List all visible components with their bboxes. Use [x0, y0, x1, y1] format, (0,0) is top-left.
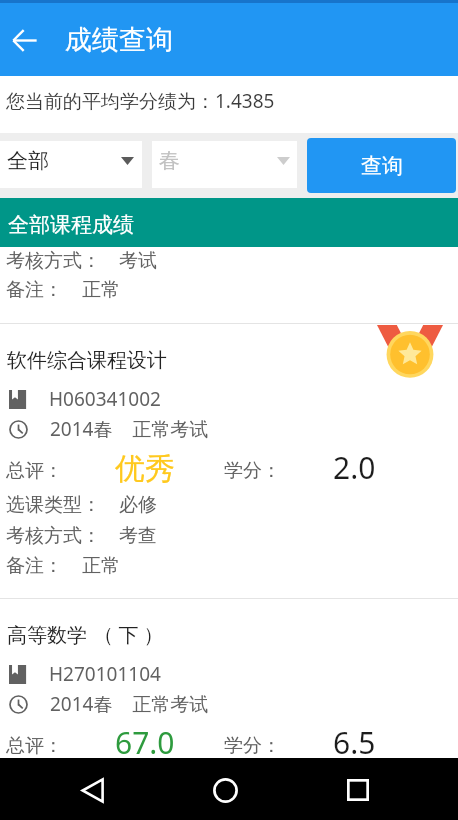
button[interactable]: Back: [2, 18, 46, 62]
button[interactable]: 考核方式：: [0, 247, 458, 323]
staticText: 备注：: [6, 278, 63, 302]
staticText: 全部: [7, 148, 49, 174]
button[interactable]: 全部: [0, 141, 142, 188]
staticText: 学分：: [224, 459, 281, 483]
staticText: 您当前的平均学分绩为：1.4385: [6, 88, 275, 114]
button[interactable]: Home: [201, 766, 249, 814]
button[interactable]: 软件综合课程设计: [0, 324, 458, 598]
staticText: 必修: [119, 493, 157, 517]
staticText: 67.0: [115, 722, 175, 758]
staticText: 春: [159, 148, 180, 174]
staticText: 查询: [361, 153, 403, 179]
button[interactable]: Recent apps: [334, 766, 382, 814]
staticText: 考核方式：: [6, 249, 101, 273]
staticText: 2014春 正常考试: [50, 416, 209, 442]
staticText: 高等数学: [7, 623, 87, 648]
staticText: 正常: [82, 278, 120, 302]
button[interactable]: 春: [152, 141, 297, 188]
staticText: 总评：: [6, 459, 63, 483]
staticText: 2.0: [333, 447, 376, 483]
staticText: 总评：: [6, 734, 63, 758]
staticText: 2014春 正常考试: [50, 691, 209, 717]
staticText: 选课类型：: [6, 768, 101, 792]
staticText: 考核方式：: [6, 799, 101, 820]
staticText: 全部课程成绩: [8, 212, 134, 238]
staticText: 选课类型：: [6, 493, 101, 517]
staticText: H060341002: [49, 386, 161, 412]
staticText: 软件综合课程设计: [7, 348, 167, 373]
staticText: 正常: [82, 554, 120, 578]
staticText: 考查: [119, 524, 157, 548]
staticText: H270101104: [49, 661, 161, 687]
button[interactable]: 高等数学: [0, 599, 458, 820]
staticText: 考试: [119, 249, 157, 273]
button[interactable]: Back: [68, 766, 116, 814]
staticText: 6.5: [333, 722, 376, 758]
staticText: 成绩查询: [65, 23, 173, 57]
staticText: 备注：: [6, 554, 63, 578]
staticText: 优秀: [115, 450, 175, 486]
staticText: 学分：: [224, 734, 281, 758]
staticText: （下）: [91, 623, 166, 648]
button[interactable]: 查询: [307, 138, 456, 193]
staticText: 考核方式：: [6, 524, 101, 548]
